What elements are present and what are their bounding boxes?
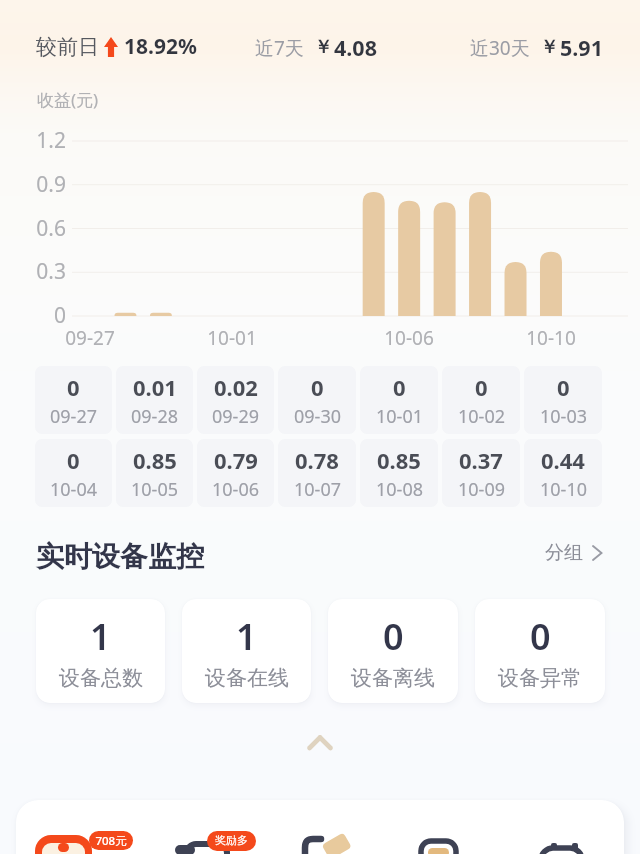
button[interactable]: 0 (278, 366, 356, 434)
button[interactable]: 0 (35, 439, 112, 507)
staticText: 0.85 (133, 445, 177, 475)
button[interactable]: 我的 (516, 826, 624, 854)
staticText: 0.01 (133, 372, 177, 402)
button[interactable]: 0.85 (116, 439, 193, 507)
staticText: 10-07 (294, 477, 341, 502)
staticText: 设备在线 (205, 665, 289, 691)
staticText: 0 (0, 301, 66, 330)
staticText: 10-03 (540, 404, 587, 429)
button[interactable]: 优惠 (280, 826, 390, 854)
staticText: 0.3 (0, 257, 66, 286)
staticText: 10-08 (376, 477, 423, 502)
staticText: 4.08 (334, 33, 377, 62)
staticText: 实时设备监控 (36, 539, 204, 574)
staticText: 708元 (89, 833, 133, 849)
staticText: ￥ (540, 36, 558, 59)
staticText: 0.02 (214, 372, 258, 402)
button[interactable]: 0 (442, 366, 520, 434)
button[interactable]: 0 (360, 366, 438, 434)
staticText: 09-27 (50, 404, 97, 429)
staticText: 09-28 (131, 404, 178, 429)
button[interactable]: 0 (524, 366, 602, 434)
button[interactable]: 0.44 (524, 439, 602, 507)
staticText: 0 (530, 612, 551, 661)
staticText: 较前日 (36, 34, 99, 60)
staticText: 1.2 (0, 126, 66, 155)
staticText: 0 (393, 372, 406, 402)
staticText: 09-27 (40, 325, 140, 351)
staticText: 10-05 (131, 477, 178, 502)
staticText: 10-01 (182, 325, 282, 351)
staticText: 10-01 (376, 404, 423, 429)
staticText: 0.37 (459, 445, 503, 475)
staticText: 10-10 (501, 325, 601, 351)
staticText: 0.6 (0, 214, 66, 243)
staticText: 0.78 (295, 445, 339, 475)
button[interactable]: 0.01 (116, 366, 193, 434)
button[interactable]: 消息 (396, 826, 506, 854)
button[interactable]: 0 (35, 366, 112, 434)
button[interactable]: 1 (36, 599, 165, 703)
staticText: 0 (67, 372, 80, 402)
staticText: 0 (383, 612, 404, 661)
staticText: 0 (67, 445, 80, 475)
staticText: 0.85 (377, 445, 421, 475)
button[interactable]: 充电 (16, 826, 150, 854)
staticText: 收益(元) (37, 88, 99, 111)
button[interactable]: 0.85 (360, 439, 438, 507)
staticText: 奖励多 (208, 833, 255, 847)
staticText: 分组 (545, 541, 583, 565)
button[interactable]: 0.02 (197, 366, 274, 434)
staticText: 近7天 (255, 35, 304, 61)
staticText: 10-06 (212, 477, 259, 502)
staticText: 设备异常 (498, 665, 582, 691)
staticText: 0 (311, 372, 324, 402)
button[interactable]: 0 (328, 599, 458, 703)
button[interactable]: 分组 (545, 541, 603, 565)
staticText: 0 (557, 372, 570, 402)
staticText: 10-09 (458, 477, 505, 502)
button[interactable]: 0 (475, 599, 605, 703)
staticText: 0.44 (541, 445, 585, 475)
staticText: 1 (236, 612, 257, 661)
staticText: 设备总数 (59, 665, 143, 691)
staticText: 10-10 (540, 477, 587, 502)
staticText: 10-02 (458, 404, 505, 429)
staticText: 1 (90, 612, 111, 661)
staticText: 0.79 (214, 445, 258, 475)
staticText: 10-06 (359, 325, 459, 351)
staticText: 近30天 (470, 35, 530, 61)
staticText: 设备离线 (351, 665, 435, 691)
staticText: 18.92% (124, 32, 197, 61)
staticText: 5.91 (560, 33, 603, 62)
button[interactable]: 订单 (169, 826, 289, 854)
staticText: 0.9 (0, 170, 66, 199)
button[interactable]: 0.37 (442, 439, 520, 507)
staticText: 0 (475, 372, 488, 402)
staticText: ￥ (314, 36, 332, 59)
button[interactable]: 0.79 (197, 439, 274, 507)
staticText: 10-04 (50, 477, 97, 502)
button[interactable]: 1 (182, 599, 311, 703)
button[interactable]: Collapse (296, 728, 344, 760)
staticText: 09-29 (212, 404, 259, 429)
button[interactable]: 0.78 (278, 439, 356, 507)
staticText: 09-30 (294, 404, 341, 429)
